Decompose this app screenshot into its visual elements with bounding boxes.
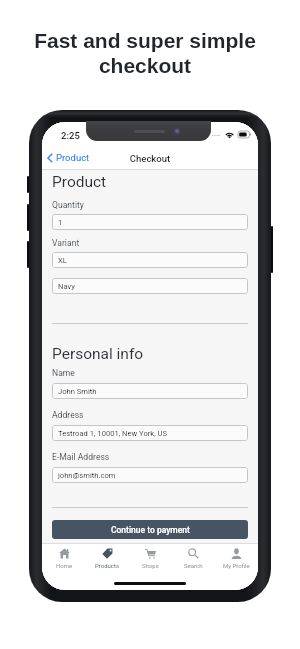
button[interactable]: Product xyxy=(45,151,92,164)
button[interactable]: Search xyxy=(172,545,215,572)
staticText: Products xyxy=(95,562,120,569)
staticText: Shops xyxy=(142,562,159,569)
button[interactable]: XL xyxy=(52,252,248,268)
staticText: Continue to payment xyxy=(111,525,190,535)
staticText: Product xyxy=(56,152,90,163)
staticText: Name xyxy=(52,368,75,378)
staticText: Address xyxy=(52,410,84,420)
button[interactable]: Testroad 1, 10001, New York, US xyxy=(52,425,248,441)
staticText: John Smith xyxy=(58,387,97,396)
staticText: Navy xyxy=(58,282,75,291)
staticText: 2:25 xyxy=(61,130,80,141)
button[interactable]: Shops xyxy=(129,545,172,572)
button[interactable]: Products xyxy=(86,545,129,572)
staticText: Search xyxy=(184,562,203,569)
button[interactable]: My Profile xyxy=(215,545,258,572)
staticText: Personal info xyxy=(52,345,144,363)
staticText: Checkout xyxy=(42,153,258,164)
button[interactable]: John Smith xyxy=(52,383,248,399)
button[interactable]: 1 xyxy=(52,214,248,230)
button[interactable]: Home xyxy=(42,545,86,572)
button[interactable]: Continue to payment xyxy=(52,520,248,539)
button[interactable]: john@smith.com xyxy=(52,467,248,483)
button[interactable]: Navy xyxy=(52,278,248,294)
staticText: Quantity xyxy=(52,200,84,210)
staticText: Testroad 1, 10001, New York, US xyxy=(58,429,168,438)
staticText: XL xyxy=(58,256,67,265)
staticText: Product xyxy=(52,173,107,191)
staticText: Fast and super simple checkout xyxy=(0,29,295,77)
staticText: My Profile xyxy=(223,562,250,569)
staticText: Home xyxy=(56,562,73,569)
staticText: E-Mail Address xyxy=(52,452,110,462)
staticText: Variant xyxy=(52,238,80,248)
staticText: 1 xyxy=(58,218,63,227)
staticText: john@smith.com xyxy=(58,471,116,480)
